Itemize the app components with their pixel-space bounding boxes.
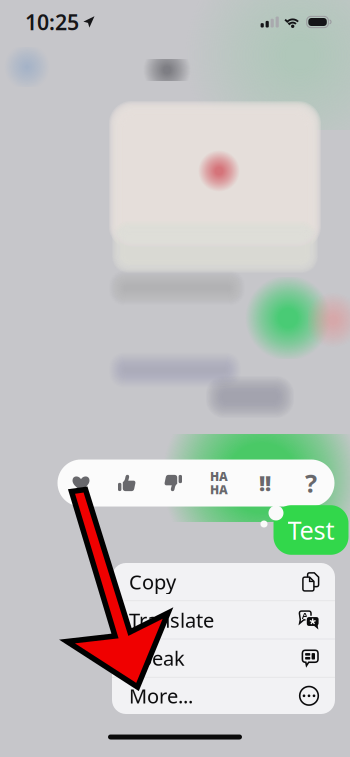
button[interactable]: Love [58,459,104,506]
button[interactable]: Exclamation [242,459,288,506]
staticText: Copy [129,568,176,595]
staticText: More... [129,682,193,709]
staticText: HA [210,468,228,484]
staticText: !! [259,469,271,497]
button[interactable]: More... [112,678,335,714]
staticText: Speak [129,645,185,671]
staticText: HA [210,482,228,498]
button[interactable]: Thumbs down [150,459,196,506]
button[interactable]: Translate [112,601,335,639]
staticText: ? [305,466,317,500]
button[interactable]: Speak [112,639,335,678]
staticText: Test [287,513,334,547]
staticText: 10:25 [25,8,79,36]
button[interactable]: Haha [196,459,242,506]
staticText: Translate [129,607,214,633]
button[interactable]: Thumbs up [104,459,150,506]
button[interactable]: Question mark [288,459,334,506]
button[interactable]: Copy [112,563,335,601]
staticText: A [302,609,308,622]
